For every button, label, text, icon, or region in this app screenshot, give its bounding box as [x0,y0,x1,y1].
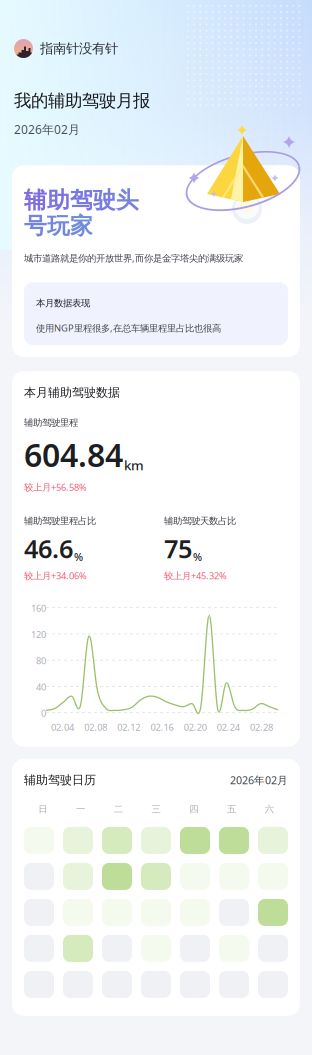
staticText: 604.84 [24,433,123,476]
staticText: 02.28 [250,721,273,733]
staticText: 0 [41,707,46,719]
staticText: 使用NGP里程很多,在总车辆里程里占比也很高 [36,322,221,334]
staticText: 五 [227,803,236,815]
staticText: 玩 [47,212,70,240]
staticText: 城市道路就是你的开放世界,而你是金字塔尖的满级玩家 [24,252,243,264]
staticText: 02.20 [184,721,207,733]
staticText: 二 [114,803,123,815]
staticText: 一 [76,803,85,815]
staticText: 80 [36,655,46,667]
staticText: 120 [31,628,46,641]
staticText: 辅助驾驶日历 [24,773,96,787]
staticText: 助 [47,186,70,214]
staticText: 头 [116,186,139,214]
staticText: 02.08 [84,721,107,733]
staticText: 辅助驾驶天数占比 [164,515,236,527]
staticText: 六 [265,803,274,815]
staticText: 本月数据表现 [36,297,90,309]
button[interactable]: 指南针没有针 [0,39,312,58]
staticText: 日 [38,803,47,815]
staticText: 四 [189,803,198,815]
staticText: 02.16 [150,721,173,733]
staticText: 我的辅助驾驶月报 [14,90,150,111]
staticText: km [124,456,144,474]
staticText: 本月辅助驾驶数据 [24,385,120,400]
staticText: 02.12 [117,721,140,733]
staticText: 驾 [70,186,93,214]
staticText: 40 [36,681,46,693]
staticText: 2026年02月 [230,773,288,787]
staticText: 160 [31,602,46,614]
staticText: 家 [70,212,93,240]
staticText: 驶 [93,186,116,214]
staticText: % [193,550,202,564]
staticText: 75 [164,532,192,565]
staticText: 号 [24,212,47,240]
staticText: 46.6 [24,532,73,565]
staticText: 02.24 [217,721,240,733]
staticText: 较上月+34.06% [24,569,87,582]
staticText: 指南针没有针 [40,40,118,57]
staticText: 02.04 [51,721,74,733]
staticText: 2026年02月 [14,121,80,137]
staticText: % [74,550,83,564]
staticText: 辅助驾驶里程占比 [24,515,96,527]
staticText: 较上月+56.58% [24,481,87,493]
staticText: 较上月+45.32% [164,569,227,582]
staticText: 辅 [24,186,47,214]
staticText: 三 [151,803,160,815]
staticText: 辅助驾驶里程 [24,417,78,428]
